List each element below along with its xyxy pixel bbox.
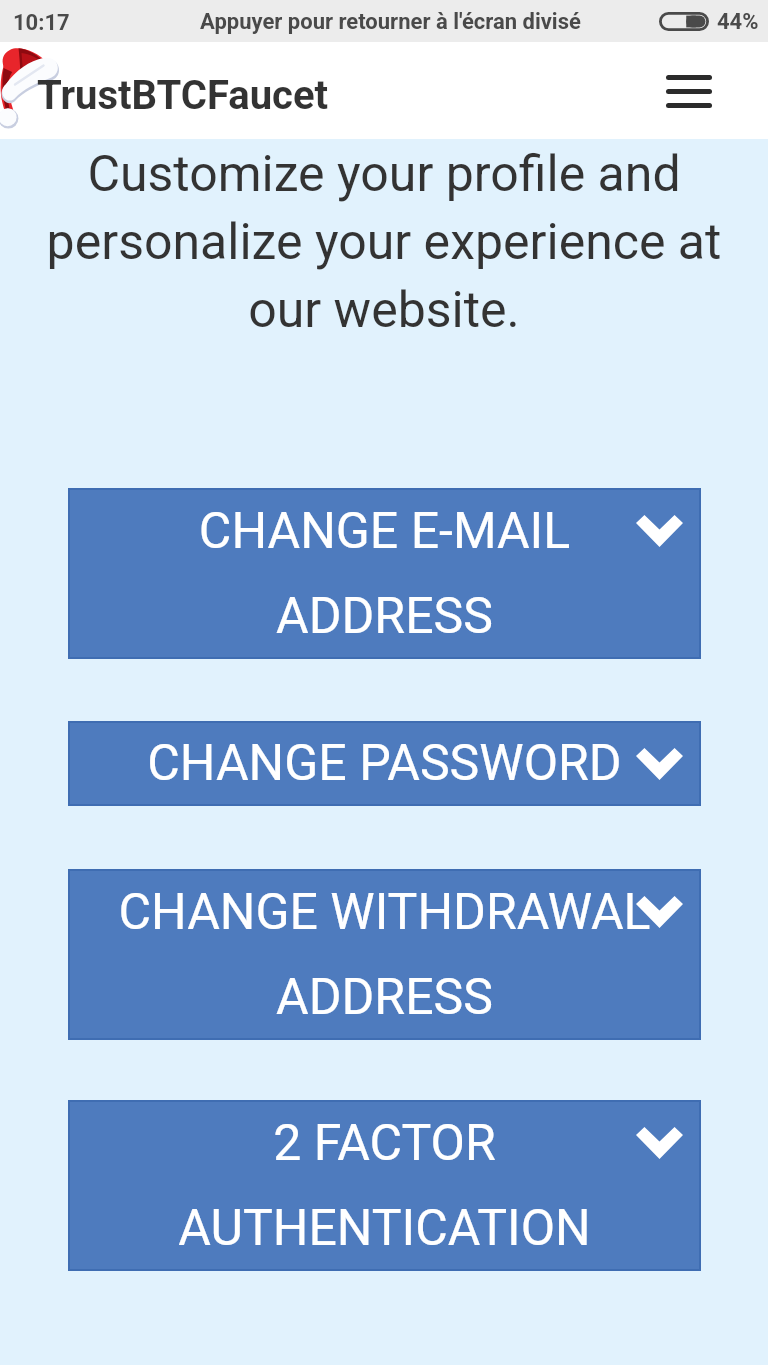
button[interactable]: Menu <box>661 63 717 119</box>
staticText: CHANGE E-MAIL ADDRESS <box>108 502 661 645</box>
staticText: 44% <box>717 9 759 35</box>
button[interactable]: CHANGE E-MAIL ADDRESS <box>68 488 701 659</box>
staticText: Appuyer pour retourner à l'écran divisé <box>200 9 581 35</box>
button[interactable]: CHANGE PASSWORD <box>68 721 701 806</box>
staticText: TrustBTCFaucet <box>37 72 329 119</box>
staticText: Customize your profile and personalize y… <box>24 145 744 339</box>
staticText: 10:17 <box>13 10 70 36</box>
staticText: CHANGE PASSWORD <box>108 734 661 793</box>
staticText: CHANGE WITHDRAWAL ADDRESS <box>108 883 661 1026</box>
staticText: 2 FACTOR AUTHENTICATION <box>108 1114 661 1257</box>
button[interactable]: CHANGE WITHDRAWAL ADDRESS <box>68 869 701 1040</box>
button[interactable]: 2 FACTOR AUTHENTICATION <box>68 1100 701 1271</box>
